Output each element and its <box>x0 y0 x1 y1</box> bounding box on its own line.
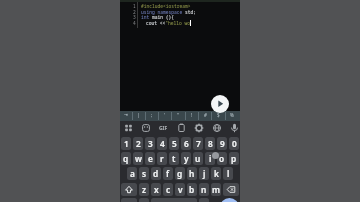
staticText: x <box>154 184 159 195</box>
button[interactable]: 5 <box>169 137 179 150</box>
button[interactable] <box>211 95 229 113</box>
staticText: l <box>227 168 230 179</box>
button[interactable]: a <box>127 167 137 180</box>
staticText: 9 <box>220 138 225 149</box>
staticText: 3 <box>148 138 153 149</box>
button[interactable]: h <box>187 167 197 180</box>
staticText: t <box>172 153 176 164</box>
button[interactable]: u <box>193 152 203 165</box>
button[interactable] <box>220 198 239 202</box>
button[interactable]: i <box>205 152 215 165</box>
staticText: cout <<"hello wo <box>146 20 191 26</box>
staticText: " <box>177 112 179 118</box>
staticText: q <box>123 153 129 164</box>
staticText: $ <box>217 112 220 118</box>
button[interactable]: q <box>121 152 131 165</box>
staticText: ! <box>191 112 193 118</box>
staticText: s <box>142 168 147 179</box>
staticText: u <box>195 153 201 164</box>
staticText: z <box>142 184 147 195</box>
staticText: b <box>189 184 195 195</box>
button[interactable]: p <box>229 152 239 165</box>
button[interactable]: r <box>157 152 167 165</box>
staticText: 7 <box>196 138 201 149</box>
button[interactable]: g <box>175 167 185 180</box>
staticText: 2 <box>133 9 136 15</box>
staticText: d <box>153 168 159 179</box>
staticText: i <box>209 153 212 164</box>
staticText: 5 <box>172 138 177 149</box>
staticText: 1 <box>133 3 136 9</box>
button[interactable]: 4 <box>157 137 167 150</box>
staticText: f <box>166 168 170 179</box>
staticText: a <box>130 168 135 179</box>
button[interactable]: 3 <box>145 137 155 150</box>
button[interactable]: 1 <box>121 137 131 150</box>
button[interactable]: 8 <box>205 137 215 150</box>
staticText: int main (){ <box>141 14 175 20</box>
button[interactable]: k <box>211 167 221 180</box>
staticText: ⇥ <box>124 112 128 117</box>
button[interactable]: t <box>169 152 179 165</box>
button[interactable] <box>120 121 240 135</box>
staticText: c <box>166 184 171 195</box>
staticText: r <box>160 153 164 164</box>
button[interactable]: c <box>163 183 173 196</box>
button[interactable]: GIF <box>159 125 168 132</box>
staticText: 6 <box>184 138 189 149</box>
staticText: y <box>184 153 189 164</box>
button[interactable]: s <box>139 167 149 180</box>
staticText: k <box>214 168 219 179</box>
staticText: % <box>230 112 234 118</box>
staticText: 8 <box>208 138 213 149</box>
button[interactable]: d <box>151 167 161 180</box>
button[interactable] <box>121 183 137 196</box>
button[interactable]: ?123 <box>121 198 137 202</box>
staticText: j <box>203 168 206 179</box>
staticText: #include<iostream> <box>141 3 191 9</box>
button[interactable]: , <box>139 198 149 202</box>
staticText: 1 <box>124 138 129 149</box>
button[interactable]: f <box>163 167 173 180</box>
staticText: ' <box>164 112 166 118</box>
button[interactable]: o <box>217 152 227 165</box>
button[interactable]: m <box>211 183 221 196</box>
staticText: ; <box>151 112 153 118</box>
staticText: using namespace std; <box>141 9 197 15</box>
button[interactable]: n <box>199 183 209 196</box>
staticText: 3 <box>133 14 136 20</box>
button[interactable]: 6 <box>181 137 191 150</box>
button[interactable]: j <box>199 167 209 180</box>
button[interactable]: x <box>151 183 161 196</box>
staticText: p <box>231 153 237 164</box>
staticText: 2 <box>136 138 141 149</box>
button[interactable]: 7 <box>193 137 203 150</box>
staticText: w <box>135 153 142 164</box>
button[interactable]: z <box>139 183 149 196</box>
button[interactable]: b <box>187 183 197 196</box>
button[interactable]: 9 <box>217 137 227 150</box>
button[interactable]: . <box>199 198 209 202</box>
button[interactable]: l <box>223 167 233 180</box>
staticText: g <box>177 168 183 179</box>
button[interactable]: y <box>181 152 191 165</box>
button[interactable]: v <box>175 183 185 196</box>
button[interactable]: 0 <box>229 137 239 150</box>
button[interactable]: e <box>145 152 155 165</box>
button[interactable]: 2 <box>133 137 143 150</box>
staticText: h <box>189 168 195 179</box>
staticText: # <box>204 112 207 118</box>
staticText: 4 <box>160 138 165 149</box>
staticText: m <box>212 184 220 195</box>
staticText: o <box>219 153 225 164</box>
button[interactable] <box>223 183 239 196</box>
staticText: e <box>148 153 153 164</box>
button[interactable]: w <box>133 152 143 165</box>
staticText: v <box>178 184 183 195</box>
staticText: | <box>137 112 140 118</box>
button[interactable] <box>120 111 240 121</box>
